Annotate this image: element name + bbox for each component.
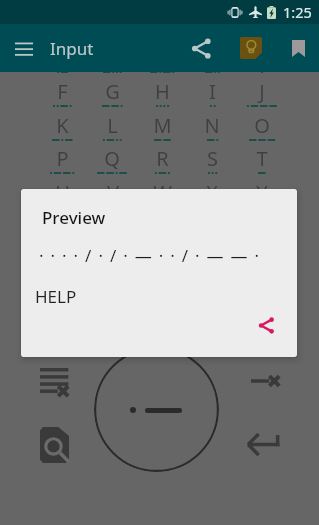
staticText: L (107, 112, 118, 139)
button[interactable]: B (87, 72, 137, 77)
button[interactable]: F (37, 78, 87, 111)
staticText: V (107, 179, 119, 206)
button[interactable]: Hint (228, 25, 274, 71)
button[interactable]: G (87, 78, 137, 111)
staticText: W (153, 179, 172, 206)
staticText: 1:25 (283, 2, 312, 22)
button[interactable]: J (237, 78, 287, 111)
staticText: · · · · / · / · — · · / · — — · (39, 244, 261, 267)
button[interactable]: Search document (34, 424, 75, 465)
button[interactable]: K (37, 112, 87, 145)
button[interactable]: C (137, 72, 187, 77)
staticText: F (57, 78, 68, 105)
button[interactable]: E (237, 72, 287, 77)
staticText: HELP (35, 285, 77, 308)
staticText: G (105, 78, 120, 105)
button[interactable]: L (87, 112, 137, 145)
button[interactable]: A (37, 72, 87, 77)
staticText: O (254, 112, 270, 139)
staticText: H (155, 78, 170, 105)
button[interactable]: V (87, 179, 137, 212)
button[interactable]: D (187, 72, 237, 77)
button[interactable]: U (37, 179, 87, 212)
button[interactable]: H (137, 78, 187, 111)
button[interactable]: Morse key (94, 347, 219, 472)
staticText: K (56, 112, 69, 139)
staticText: Q (104, 145, 120, 172)
staticText: I (209, 78, 216, 105)
button[interactable]: Q (87, 145, 137, 178)
button[interactable]: T (237, 145, 287, 178)
button[interactable]: P (37, 145, 87, 178)
button[interactable]: Share preview (249, 308, 283, 342)
staticText: Z (56, 212, 68, 239)
staticText: M (153, 112, 172, 139)
button[interactable]: Bookmark (278, 28, 318, 68)
staticText: X (206, 179, 218, 206)
button[interactable]: Enter (243, 425, 283, 465)
staticText: Preview (42, 206, 106, 229)
button[interactable]: N (187, 112, 237, 145)
button[interactable]: 0 (87, 212, 137, 245)
button[interactable]: Share (178, 25, 224, 71)
button[interactable]: X (187, 179, 237, 212)
staticText: U (55, 179, 70, 206)
button[interactable]: Backspace (245, 361, 285, 401)
staticText: P (56, 145, 69, 172)
button[interactable]: Z (37, 212, 87, 245)
button[interactable]: S (187, 145, 237, 178)
button[interactable]: I (187, 78, 237, 111)
button[interactable]: R (137, 145, 187, 178)
button[interactable]: O (237, 112, 287, 145)
staticText: Input (50, 37, 94, 60)
button[interactable]: Y (237, 179, 287, 212)
button[interactable]: M (137, 112, 187, 145)
staticText: R (156, 145, 169, 172)
staticText: S (207, 145, 218, 172)
button[interactable]: W (137, 179, 187, 212)
staticText: Y (256, 179, 268, 206)
staticText: N (204, 112, 220, 139)
button[interactable]: Navigation menu (0, 24, 48, 72)
staticText: J (259, 78, 265, 105)
button[interactable]: Clear all (34, 360, 75, 401)
staticText: T (256, 145, 268, 172)
